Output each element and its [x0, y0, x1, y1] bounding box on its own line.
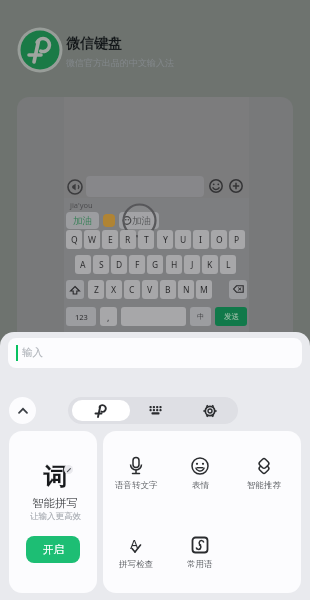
button[interactable]: 常用语 [167, 524, 233, 576]
staticText: 输入 [22, 346, 43, 359]
staticText: , [107, 311, 110, 323]
staticText: 智能推荐 [247, 480, 281, 491]
staticText: G [152, 259, 159, 271]
button[interactable]: 智能推荐 [231, 445, 297, 497]
staticText: O [216, 234, 223, 246]
staticText: T [144, 234, 149, 246]
button[interactable] [72, 400, 130, 421]
staticText: X [111, 284, 117, 296]
button[interactable]: 词 [9, 431, 97, 593]
staticText: N [183, 284, 190, 296]
button[interactable]: A [103, 524, 169, 576]
staticText: W [88, 234, 96, 246]
staticText: S [99, 259, 104, 271]
staticText: B [165, 284, 171, 296]
staticText: A [130, 535, 139, 553]
staticText: 开启 [43, 543, 64, 556]
staticText: 微信官方出品的中文输入法 [66, 57, 174, 68]
staticText: I [199, 234, 203, 246]
staticText: 语音转文字 [115, 480, 158, 491]
staticText: 123 [75, 312, 88, 322]
staticText: 词 [43, 462, 67, 492]
staticText: J [191, 259, 194, 271]
staticText: M [200, 284, 208, 296]
button[interactable] [199, 400, 221, 421]
button[interactable]: 输入 [8, 338, 302, 368]
staticText: 发送 [224, 312, 239, 321]
staticText: 常用语 [187, 559, 213, 570]
staticText: F [135, 259, 140, 271]
staticText: 加油 [127, 214, 151, 227]
staticText: E [108, 234, 113, 246]
button[interactable] [9, 397, 36, 424]
staticText: H [171, 259, 178, 271]
staticText: R [125, 234, 131, 246]
staticText: 拼写检查 [119, 559, 153, 570]
staticText: 智能拼写 [32, 496, 78, 510]
staticText: 微信键盘 [66, 35, 122, 53]
button[interactable]: 语音转文字 [103, 445, 169, 497]
button[interactable]: 开启 [26, 536, 80, 563]
staticText: 让输入更高效 [30, 511, 81, 522]
staticText: 中 [197, 312, 204, 321]
staticText: D [116, 259, 123, 271]
staticText: 加油 [73, 215, 92, 227]
staticText: jia'you [70, 200, 93, 210]
staticText: Q [71, 234, 78, 246]
staticText: A [80, 259, 86, 271]
button[interactable]: 表情 [167, 445, 233, 497]
staticText: V [147, 284, 153, 296]
staticText: 表情 [192, 480, 209, 491]
button[interactable] [144, 400, 166, 421]
staticText: Z [94, 284, 99, 296]
staticText: Y [163, 234, 168, 246]
staticText: C [129, 284, 135, 296]
staticText: P [234, 234, 240, 246]
staticText: L [226, 259, 231, 271]
staticText: K [207, 259, 213, 271]
staticText: U [180, 234, 187, 246]
